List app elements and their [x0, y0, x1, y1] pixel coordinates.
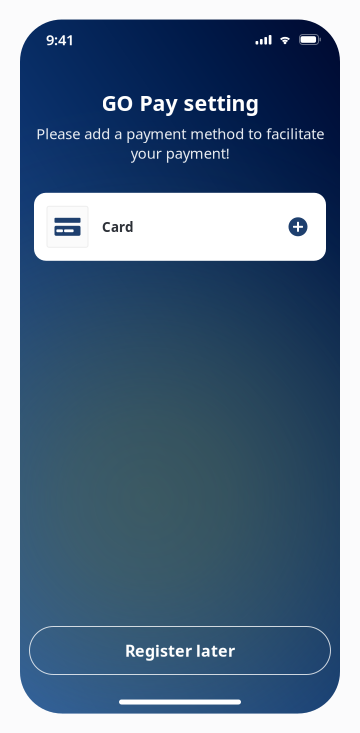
staticText: Please add a payment method to facilitat… [36, 124, 324, 163]
staticText: Register later [125, 640, 235, 661]
staticText: GO Pay setting [101, 88, 258, 117]
button[interactable]: Card [34, 193, 326, 261]
staticText: Card [102, 218, 133, 236]
button[interactable]: Register later [29, 626, 330, 674]
staticText: 9:41 [46, 30, 74, 49]
